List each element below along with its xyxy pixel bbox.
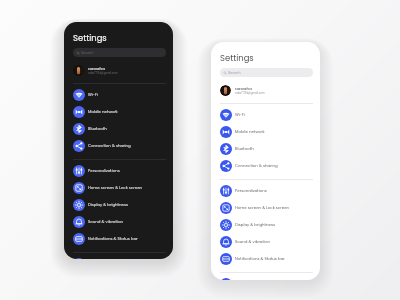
staticText: nata777kk@gmail.com: [235, 91, 265, 95]
staticText: Home screen & Lock screen: [235, 205, 290, 211]
button[interactable]: Bluetooth: [211, 140, 320, 157]
button[interactable]: Notifications & Status bar: [64, 230, 173, 247]
staticText: Personalizations: [88, 168, 120, 174]
button[interactable]: Connection & sharing: [211, 157, 320, 174]
staticText: Natasha: [235, 86, 252, 91]
button[interactable]: Display & brightness: [211, 216, 320, 233]
staticText: Search: [81, 50, 94, 55]
button[interactable]: Mobile network: [64, 103, 173, 120]
button[interactable]: Natasha: [64, 62, 173, 78]
button[interactable]: Personalizations: [211, 182, 320, 199]
button[interactable]: Home screen & Lock screen: [211, 199, 320, 216]
staticText: Bluetooth: [235, 146, 254, 152]
button[interactable]: Sound & vibration: [64, 213, 173, 230]
staticText: Wi-Fi: [235, 112, 245, 118]
button[interactable]: Home screen & Lock screen: [64, 179, 173, 196]
staticText: Notifications & Status bar: [235, 256, 285, 262]
button[interactable]: Bluetooth: [64, 120, 173, 137]
staticText: Home screen & Lock screen: [88, 185, 143, 191]
staticText: Connection & sharing: [88, 143, 131, 149]
button[interactable]: Natasha: [211, 82, 320, 98]
button[interactable]: Display & brightness: [64, 196, 173, 213]
staticText: Sound & vibration: [88, 219, 123, 225]
button[interactable]: Wi-Fi: [211, 106, 320, 123]
staticText: Settings: [220, 52, 254, 64]
button[interactable]: Security: [211, 275, 320, 280]
button[interactable]: Wi-Fi: [64, 86, 173, 103]
staticText: Wi-Fi: [88, 92, 98, 98]
button[interactable]: Mobile network: [211, 123, 320, 140]
staticText: Sound & vibration: [235, 239, 270, 245]
staticText: Mobile network: [235, 129, 265, 135]
button[interactable]: Search: [73, 48, 166, 57]
button[interactable]: Personalizations: [64, 162, 173, 179]
button[interactable]: Connection & sharing: [64, 137, 173, 154]
staticText: Mobile network: [88, 109, 118, 115]
staticText: Search: [228, 70, 241, 75]
button[interactable]: Notifications & Status bar: [211, 250, 320, 267]
staticText: Notifications & Status bar: [88, 236, 138, 242]
staticText: Display & brightness: [235, 222, 276, 228]
button[interactable]: Search: [220, 68, 313, 77]
button[interactable]: Security: [64, 255, 173, 259]
staticText: nata777kk@gmail.com: [88, 71, 118, 75]
staticText: Bluetooth: [88, 126, 107, 132]
staticText: Settings: [73, 32, 107, 44]
button[interactable]: Sound & vibration: [211, 233, 320, 250]
staticText: Display & brightness: [88, 202, 129, 208]
staticText: Natasha: [88, 66, 105, 71]
staticText: Connection & sharing: [235, 163, 278, 169]
staticText: Personalizations: [235, 188, 267, 194]
